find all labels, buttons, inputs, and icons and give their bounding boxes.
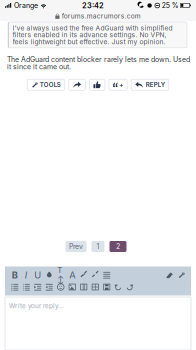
button[interactable]: Redo <box>124 282 135 291</box>
button[interactable]: Like <box>89 79 105 90</box>
button[interactable]: Bold <box>9 270 20 279</box>
button[interactable]: Insert image <box>66 282 78 291</box>
button[interactable]: Italic <box>20 270 32 279</box>
button[interactable]: Emoji <box>55 282 66 291</box>
staticText: B <box>12 269 18 281</box>
staticText: U <box>34 269 41 281</box>
staticText: + <box>119 81 123 88</box>
button[interactable]: Indent <box>32 282 43 291</box>
button[interactable]: Share <box>69 79 85 90</box>
button[interactable]: Font <box>66 270 78 279</box>
staticText: Orange <box>14 1 38 10</box>
staticText: REPLY <box>146 81 165 88</box>
staticText: Write your reply... <box>9 302 64 310</box>
button[interactable]: Insert media <box>78 282 89 291</box>
button[interactable]: forums.macrumors.com <box>0 11 196 21</box>
staticText: 1 <box>96 242 99 251</box>
button[interactable]: Outdent <box>43 282 55 291</box>
button[interactable]: Font size <box>55 270 66 279</box>
button[interactable]: Text colour <box>43 270 55 279</box>
staticText: 23:42 <box>82 1 104 10</box>
button[interactable]: Bulleted list <box>9 282 20 291</box>
button[interactable]: REPLY <box>131 79 169 90</box>
staticText: Prev <box>69 242 83 251</box>
staticText: forums.macrumors.com <box>62 12 141 20</box>
staticText: 2 <box>116 242 120 251</box>
staticText: I <box>25 269 28 281</box>
button[interactable]: More tools <box>175 270 187 279</box>
button[interactable]: Clear formatting <box>164 270 175 279</box>
button[interactable]: Insert link <box>78 270 89 279</box>
button[interactable]: Insert block <box>101 282 112 291</box>
button[interactable]: 1 <box>91 241 104 252</box>
staticText: A <box>69 269 75 281</box>
button[interactable]: Numbered list <box>20 282 32 291</box>
button[interactable]: Alignment <box>101 270 112 279</box>
staticText: The AdGuard content blocker rarely lets … <box>7 56 190 70</box>
button[interactable]: Insert table <box>89 282 101 291</box>
button[interactable]: Prev <box>65 241 86 252</box>
button[interactable]: Quote <box>109 79 127 90</box>
staticText: 25 % <box>162 1 179 10</box>
button[interactable]: Underline <box>32 270 43 279</box>
staticText: T↕ <box>57 265 64 285</box>
button[interactable]: Undo <box>112 282 124 291</box>
button[interactable]: Remove link <box>89 270 101 279</box>
button[interactable]: 2 <box>109 241 126 252</box>
staticText: I've always used the free AdGuard with s… <box>12 24 172 45</box>
button[interactable]: TOOLS <box>27 79 65 90</box>
button[interactable]: Write your reply... <box>0 297 196 350</box>
staticText: TOOLS <box>40 81 61 88</box>
